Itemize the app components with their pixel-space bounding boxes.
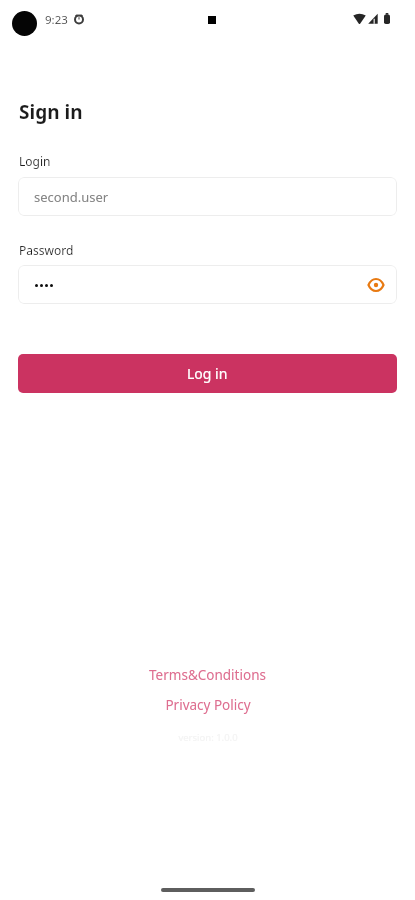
staticText: Password <box>19 242 74 258</box>
staticText: Log in <box>187 364 228 383</box>
button[interactable]: Privacy Policy <box>0 696 415 714</box>
button[interactable]: Show password <box>18 265 397 304</box>
button[interactable]: Show password <box>362 271 390 299</box>
staticText: Sign in <box>19 99 83 125</box>
staticText: version: 1.0.0 <box>178 731 238 744</box>
staticText: Login <box>19 153 51 169</box>
staticText: Privacy Policy <box>165 696 251 714</box>
button[interactable]: Terms&Conditions <box>0 666 415 684</box>
staticText: Terms&Conditions <box>149 666 266 684</box>
button[interactable]: second.user <box>18 177 397 216</box>
staticText: second.user <box>34 188 109 206</box>
button[interactable]: Log in <box>18 354 397 393</box>
staticText: 9:23 <box>45 12 68 28</box>
